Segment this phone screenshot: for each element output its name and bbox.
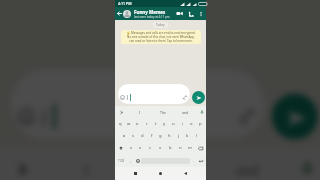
button[interactable]: d bbox=[138, 130, 147, 142]
button[interactable]: More suggestions bbox=[115, 106, 128, 118]
staticText: 🔒 Messages and calls are end-to-end encr… bbox=[125, 31, 197, 43]
button[interactable]: ?123 bbox=[116, 154, 127, 167]
button[interactable]: l bbox=[192, 130, 201, 142]
staticText: . bbox=[193, 158, 195, 163]
button[interactable]: Emoji bbox=[134, 154, 141, 167]
staticText: u bbox=[172, 121, 175, 127]
button[interactable]: i bbox=[178, 118, 187, 130]
button[interactable]: J bbox=[10, 69, 265, 139]
staticText: q bbox=[119, 121, 122, 127]
staticText: ?123 bbox=[118, 159, 125, 163]
button[interactable]: Today bbox=[153, 22, 168, 28]
staticText: v bbox=[159, 145, 162, 151]
staticText: Funny Memes Gr... bbox=[134, 9, 174, 15]
staticText: t bbox=[155, 121, 157, 127]
staticText: i bbox=[182, 121, 184, 127]
button[interactable]: r bbox=[142, 118, 151, 130]
button[interactable]: b bbox=[165, 142, 175, 154]
staticText: I bbox=[139, 110, 141, 115]
button[interactable]: Profile photo bbox=[123, 10, 131, 18]
button[interactable]: h bbox=[165, 130, 174, 142]
button[interactable]: J bbox=[118, 84, 190, 104]
button[interactable]: More options bbox=[196, 7, 206, 20]
button[interactable]: q bbox=[116, 118, 124, 130]
button[interactable]: Video call bbox=[174, 7, 185, 20]
button[interactable]: o bbox=[187, 118, 196, 130]
button[interactable]: and bbox=[174, 106, 197, 118]
staticText: w bbox=[127, 121, 131, 127]
button[interactable]: I bbox=[46, 147, 127, 180]
staticText: f bbox=[151, 133, 153, 139]
button[interactable]: u bbox=[169, 118, 178, 130]
button[interactable]: Voice input bbox=[290, 147, 320, 180]
staticText: g bbox=[159, 133, 162, 139]
staticText: 4:11 PM bbox=[118, 1, 132, 6]
staticText: e bbox=[136, 121, 139, 127]
staticText: m bbox=[188, 145, 192, 151]
staticText: J bbox=[127, 94, 129, 101]
button[interactable]: Shift bbox=[115, 142, 126, 154]
staticText: j bbox=[178, 133, 180, 139]
button[interactable]: e bbox=[133, 118, 142, 130]
button[interactable]: s bbox=[129, 130, 138, 142]
staticText: s bbox=[132, 133, 135, 139]
button[interactable]: Back bbox=[181, 169, 190, 178]
staticText: r bbox=[146, 121, 148, 127]
staticText: o bbox=[190, 121, 193, 127]
staticText: and bbox=[236, 161, 261, 178]
button[interactable]: Send bbox=[272, 93, 318, 139]
staticText: h bbox=[168, 133, 171, 139]
button[interactable]: Back bbox=[115, 7, 123, 20]
button[interactable]: j bbox=[174, 130, 183, 142]
staticText: z bbox=[130, 145, 132, 151]
button[interactable]: 🔒 Messages and calls are end-to-end encr… bbox=[121, 30, 201, 44]
staticText: , bbox=[130, 158, 132, 163]
button[interactable]: n bbox=[175, 142, 185, 154]
staticText: The bbox=[160, 110, 166, 115]
staticText: a bbox=[123, 133, 126, 139]
staticText: Today bbox=[156, 23, 165, 27]
button[interactable]: Enter bbox=[197, 154, 205, 167]
button[interactable]: g bbox=[156, 130, 165, 142]
staticText: and bbox=[182, 110, 189, 115]
button[interactable]: m bbox=[185, 142, 195, 154]
button[interactable]: Recents bbox=[131, 169, 140, 178]
button[interactable]: t bbox=[151, 118, 160, 130]
staticText: k bbox=[186, 133, 189, 139]
button[interactable]: , bbox=[127, 154, 134, 167]
button[interactable]: The bbox=[127, 147, 208, 180]
staticText: p bbox=[199, 121, 202, 127]
button[interactable]: More suggestions bbox=[0, 147, 46, 180]
button[interactable]: Send bbox=[192, 91, 205, 104]
staticText: c bbox=[149, 145, 152, 151]
staticText: n bbox=[179, 145, 182, 151]
button[interactable]: f bbox=[147, 130, 156, 142]
button[interactable]: v bbox=[155, 142, 165, 154]
staticText: l bbox=[196, 133, 198, 139]
staticText: The bbox=[159, 161, 180, 178]
button[interactable]: p bbox=[196, 118, 205, 130]
button[interactable]: Voice call bbox=[185, 7, 196, 20]
button[interactable]: k bbox=[183, 130, 192, 142]
button[interactable]: z bbox=[126, 142, 135, 154]
button[interactable]: y bbox=[160, 118, 169, 130]
staticText: d bbox=[141, 133, 144, 139]
button[interactable]: a bbox=[120, 130, 129, 142]
button[interactable]: w bbox=[124, 118, 133, 130]
button[interactable]: Voice input bbox=[197, 106, 206, 118]
button[interactable]: Backspace bbox=[195, 142, 206, 154]
staticText: b bbox=[169, 145, 172, 151]
button[interactable]: I bbox=[128, 106, 151, 118]
button[interactable]: x bbox=[135, 142, 145, 154]
staticText: last seen today at 4:11 pm bbox=[134, 15, 170, 19]
staticText: x bbox=[139, 145, 142, 151]
button[interactable]: The bbox=[151, 106, 174, 118]
staticText: y bbox=[163, 121, 166, 127]
button[interactable]: c bbox=[145, 142, 155, 154]
button[interactable]: Home bbox=[156, 169, 165, 178]
